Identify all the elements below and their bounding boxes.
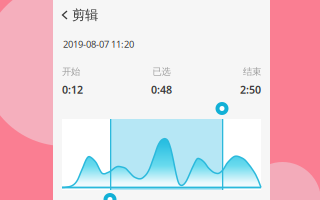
- button[interactable]: 剪辑: [62, 5, 122, 25]
- staticText: 2019-08-07 11:20: [63, 38, 134, 50]
- staticText: 剪辑: [72, 7, 98, 23]
- button[interactable]: Selection end handle: [215, 102, 228, 115]
- staticText: 已选: [152, 66, 170, 77]
- staticText: 结束: [243, 66, 261, 77]
- staticText: 2:50: [240, 82, 261, 97]
- staticText: 0:48: [151, 82, 172, 97]
- button[interactable]: Selection start handle: [103, 193, 116, 200]
- staticText: 0:12: [62, 82, 83, 97]
- staticText: 开始: [62, 66, 80, 77]
